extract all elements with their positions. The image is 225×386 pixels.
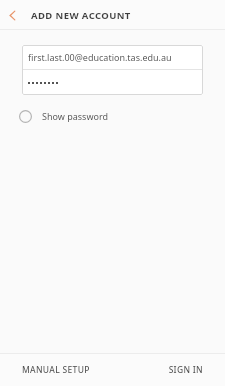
button[interactable]: Show password — [16, 104, 108, 128]
staticText: first.last.00@education.tas.edu.au — [28, 51, 172, 63]
button[interactable] — [22, 70, 203, 95]
button[interactable]: SIGN IN — [112, 353, 225, 386]
staticText: ADD NEW ACCOUNT — [31, 9, 131, 22]
button[interactable]: Back — [0, 0, 26, 30]
button[interactable]: MANUAL SETUP — [0, 353, 112, 386]
staticText: Show password — [42, 110, 108, 122]
staticText: SIGN IN — [168, 364, 203, 376]
staticText: MANUAL SETUP — [22, 364, 90, 376]
button[interactable]: first.last.00@education.tas.edu.au — [22, 45, 203, 69]
